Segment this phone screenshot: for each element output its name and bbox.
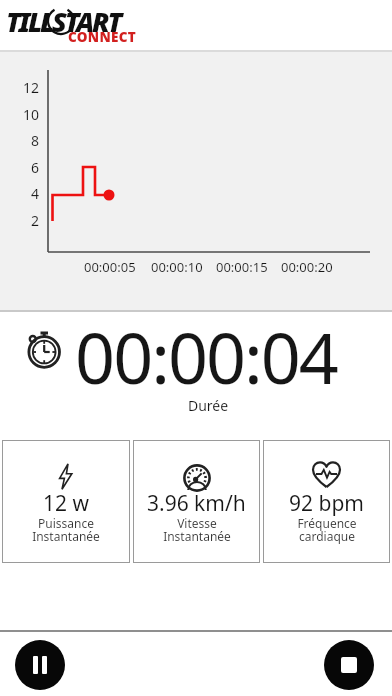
- staticText: Fréquence cardiaque: [297, 515, 357, 544]
- staticText: 00:00:04: [10, 309, 392, 404]
- staticText: 10: [23, 105, 40, 124]
- button[interactable]: 12 w: [2, 440, 130, 563]
- staticText: Durée: [12, 396, 392, 415]
- staticText: 00:00:15: [216, 258, 268, 276]
- staticText: 3.96 km/h: [147, 489, 246, 518]
- button[interactable]: 92 bpm: [263, 440, 390, 563]
- button[interactable]: [324, 640, 374, 690]
- staticText: 2: [31, 211, 40, 230]
- staticText: 00:00:10: [151, 258, 203, 276]
- staticText: 4: [31, 184, 40, 203]
- staticText: TILLSTART: [6, 3, 121, 40]
- staticText: 8: [31, 131, 40, 150]
- staticText: Puissance Instantanée: [32, 515, 100, 544]
- staticText: 12 w: [43, 489, 89, 518]
- staticText: Vitesse Instantanée: [163, 515, 231, 544]
- staticText: CONNECT: [68, 28, 137, 46]
- staticText: 00:00:05: [84, 258, 136, 276]
- button[interactable]: 3.96 km/h: [133, 440, 260, 563]
- staticText: 12: [23, 78, 40, 97]
- staticText: 00:00:20: [281, 258, 333, 276]
- staticText: 92 bpm: [289, 489, 364, 518]
- staticText: 6: [31, 158, 40, 177]
- button[interactable]: [15, 640, 65, 690]
